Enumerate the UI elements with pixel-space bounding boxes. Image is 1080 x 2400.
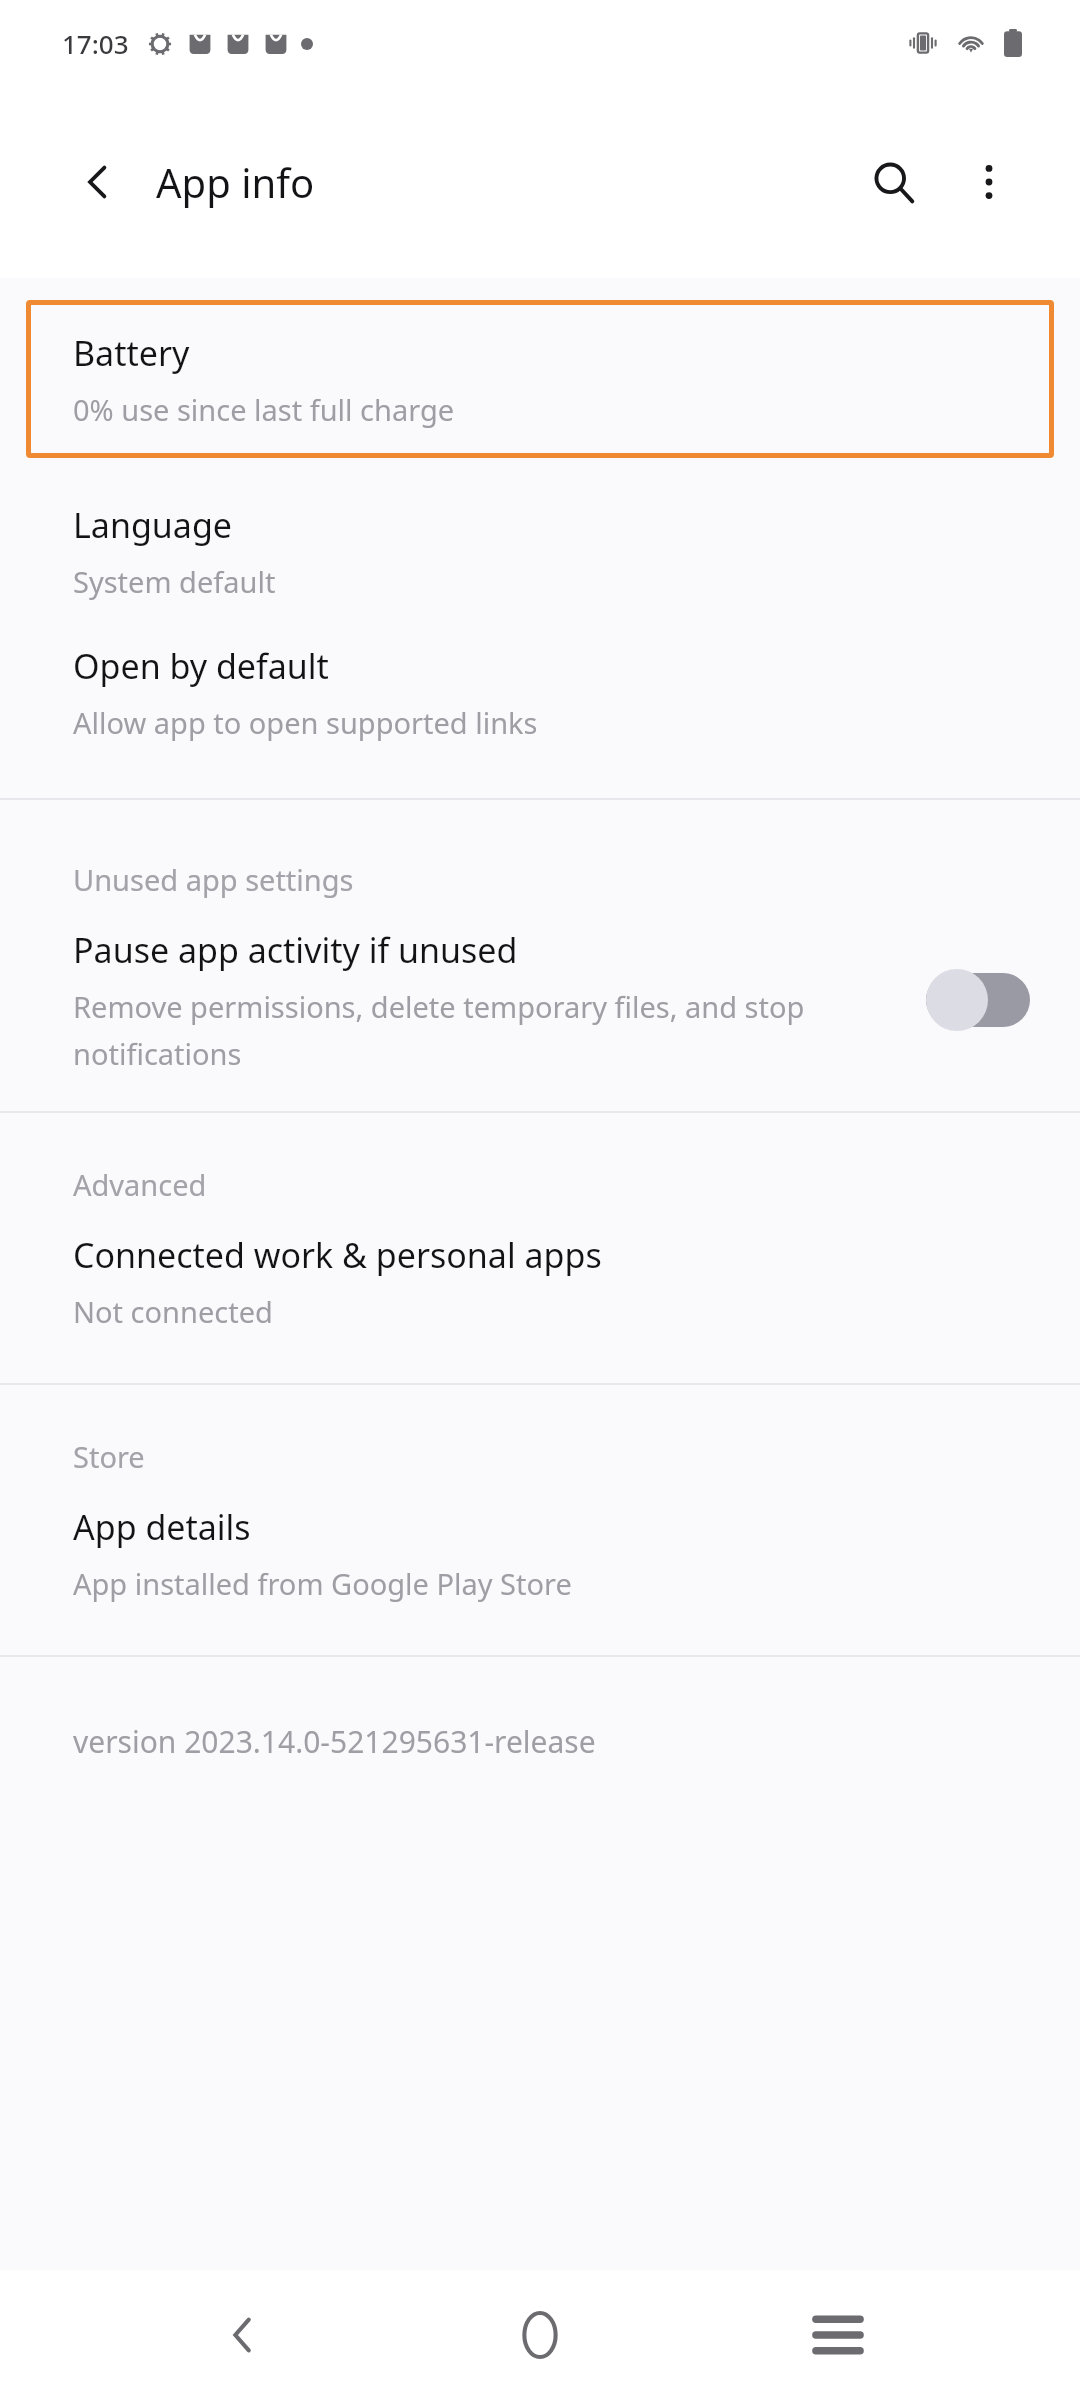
staticText: Store [73, 1437, 145, 1476]
button[interactable]: More options [946, 139, 1032, 225]
staticText: Pause app activity if unused [73, 927, 518, 973]
staticText: Open by default [73, 643, 329, 689]
button[interactable]: Open by default [0, 637, 1080, 748]
button[interactable]: Pause app activity if unused [0, 899, 1080, 1111]
staticText: Advanced [73, 1165, 207, 1204]
staticText: Allow app to open supported links [73, 703, 538, 742]
button[interactable]: Connected work & personal apps [0, 1226, 1080, 1337]
staticText: version 2023.14.0-521295631-release [73, 1721, 596, 1762]
button[interactable]: Home [485, 2280, 595, 2390]
button[interactable]: Pause app activity if unused toggle [926, 969, 1030, 1031]
button[interactable]: Back [62, 146, 134, 218]
staticText: 0% use since last full charge [73, 390, 455, 429]
staticText: Battery [73, 330, 190, 376]
button[interactable]: App details [0, 1498, 1080, 1609]
staticText: System default [73, 562, 276, 601]
staticText: Remove permissions, delete temporary fil… [73, 987, 886, 1073]
button[interactable]: Back [188, 2280, 298, 2390]
staticText: 17:03 [62, 26, 129, 61]
staticText: App details [73, 1504, 251, 1550]
staticText: Language [73, 502, 232, 548]
staticText: App info [156, 155, 315, 209]
staticText: Unused app settings [73, 860, 354, 899]
staticText: Not connected [73, 1292, 273, 1331]
staticText: App installed from Google Play Store [73, 1564, 572, 1603]
staticText: Connected work & personal apps [73, 1232, 602, 1278]
button[interactable]: Recent apps [783, 2280, 893, 2390]
button[interactable]: Search [850, 139, 936, 225]
button[interactable]: Battery [26, 300, 1054, 458]
button[interactable]: Language [0, 496, 1080, 607]
